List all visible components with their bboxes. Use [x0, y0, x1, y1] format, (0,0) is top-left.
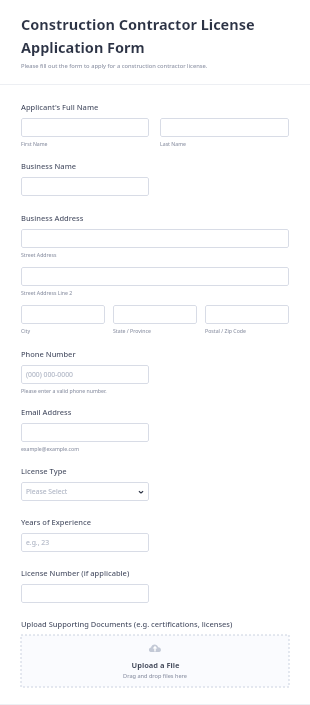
button[interactable]: Upload a File [21, 635, 289, 687]
staticText: Please fill out the form to apply for a … [21, 62, 208, 70]
button[interactable] [160, 118, 289, 137]
staticText: Upload Supporting Documents (e.g. certif… [21, 619, 233, 629]
staticText: Applicant's Full Name [21, 102, 99, 112]
button[interactable] [21, 177, 149, 196]
staticText: Email Address [21, 407, 72, 417]
button[interactable]: Please Select [21, 482, 149, 501]
staticText: Please Select [26, 487, 68, 496]
staticText: Street Address Line 2 [21, 289, 73, 296]
button[interactable]: e.g., 23 [21, 533, 149, 552]
button[interactable] [21, 305, 105, 324]
button[interactable] [21, 229, 289, 248]
button[interactable]: (000) 000-0000 [21, 365, 149, 384]
staticText: Drag and drop files here [123, 672, 187, 680]
staticText: Phone Number [21, 349, 76, 359]
staticText: example@example.com [21, 445, 80, 452]
staticText: State / Province [113, 327, 151, 334]
button[interactable] [205, 305, 289, 324]
button[interactable] [21, 423, 149, 442]
staticText: Upload a File [131, 660, 180, 670]
staticText: Postal / Zip Code [205, 327, 246, 334]
staticText: e.g., 23 [26, 538, 50, 547]
button[interactable] [113, 305, 197, 324]
staticText: Construction Contractor License [21, 14, 255, 34]
staticText: Last Name [160, 140, 186, 147]
staticText: City [21, 327, 31, 334]
staticText: License Type [21, 466, 67, 476]
staticText: Years of Experience [21, 517, 91, 527]
button[interactable] [21, 118, 149, 137]
staticText: License Number (if applicable) [21, 568, 130, 578]
staticText: First Name [21, 140, 48, 147]
button[interactable] [21, 584, 149, 603]
staticText: Application Form [21, 37, 145, 57]
button[interactable] [21, 267, 289, 286]
staticText: Please enter a valid phone number. [21, 387, 107, 394]
staticText: Street Address [21, 251, 57, 258]
staticText: Business Name [21, 161, 77, 171]
staticText: Business Address [21, 213, 84, 223]
staticText: (000) 000-0000 [26, 370, 73, 379]
